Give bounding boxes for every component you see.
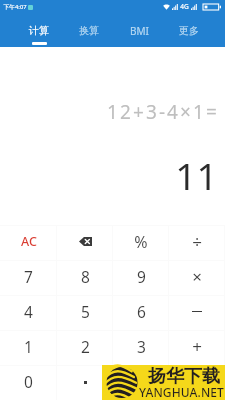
staticText: 5	[81, 301, 90, 322]
other: Delete	[79, 237, 92, 246]
staticText: 2	[81, 336, 90, 357]
button[interactable]: ÷	[169, 225, 225, 260]
button[interactable]: Delete	[57, 225, 113, 260]
button[interactable]: 4	[0, 295, 57, 330]
staticText: 0	[24, 371, 33, 392]
button[interactable]	[169, 295, 225, 330]
button[interactable]: 8	[57, 260, 113, 295]
button[interactable]: AC	[0, 225, 57, 260]
staticText: +	[192, 335, 202, 358]
button[interactable]: 6	[113, 295, 169, 330]
staticText: BMI	[130, 24, 149, 38]
staticText: 3	[137, 336, 146, 357]
button[interactable]: 9	[113, 260, 169, 295]
button[interactable]: 5	[57, 295, 113, 330]
button[interactable]: BMI	[114, 13, 164, 47]
staticText: %	[134, 231, 148, 253]
button[interactable]	[113, 365, 169, 400]
staticText: 6	[137, 301, 146, 322]
staticText: 更多	[179, 24, 199, 37]
staticText: 8	[81, 266, 90, 287]
button[interactable]: 更多	[164, 13, 214, 47]
staticText: 4	[24, 301, 33, 322]
staticText: 1	[24, 336, 33, 357]
button[interactable]: 1	[0, 330, 57, 365]
button[interactable]: 3	[113, 330, 169, 365]
staticText: ÷	[192, 230, 202, 253]
button[interactable]: +	[169, 330, 225, 365]
button[interactable]: 0	[0, 365, 57, 400]
staticText: 扬华下载	[148, 365, 220, 388]
staticText: 换算	[79, 24, 99, 37]
staticText: 7	[24, 266, 33, 287]
button[interactable]: 计算	[14, 13, 64, 47]
staticText: ×	[192, 265, 202, 288]
button[interactable]: 2	[57, 330, 113, 365]
staticText: 4G	[180, 2, 189, 11]
staticText: 12+3-4×1=	[107, 99, 219, 125]
button[interactable]: ×	[169, 260, 225, 295]
staticText: AC	[21, 233, 37, 250]
staticText: 9	[137, 266, 146, 287]
button[interactable]: 换算	[64, 13, 114, 47]
button[interactable]	[57, 365, 113, 400]
staticText: 下午4:07	[3, 3, 27, 11]
staticText: YANGHUA.NET	[139, 384, 224, 400]
button[interactable]	[169, 365, 225, 400]
button[interactable]: 7	[0, 260, 57, 295]
staticText: 11	[175, 150, 218, 200]
button[interactable]: %	[113, 225, 169, 260]
staticText: 计算	[29, 24, 49, 37]
